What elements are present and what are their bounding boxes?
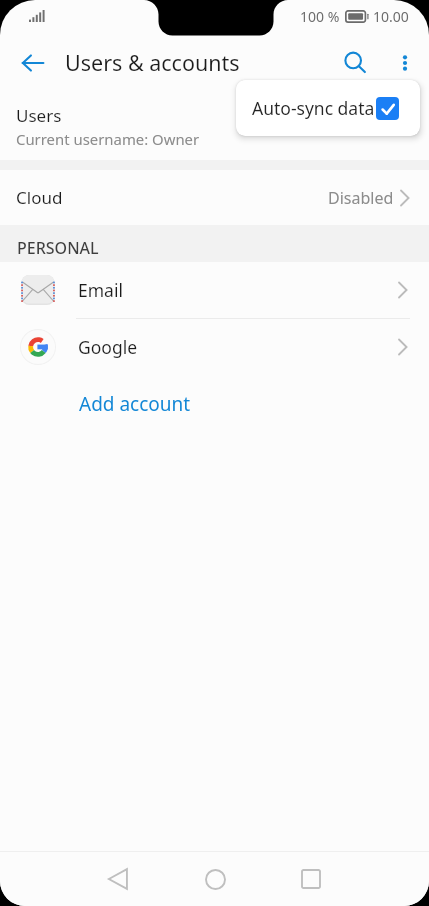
staticText: PERSONAL xyxy=(17,237,99,259)
button[interactable]: Email xyxy=(0,262,429,318)
staticText: Users xyxy=(16,104,62,127)
staticText: Disabled xyxy=(328,187,394,209)
button[interactable]: Back xyxy=(11,41,55,85)
button[interactable]: Google xyxy=(0,319,429,375)
button[interactable]: Back xyxy=(93,853,145,905)
staticText: 100 % xyxy=(300,7,340,26)
staticText: Users & accounts xyxy=(65,48,240,77)
button[interactable]: Recents xyxy=(285,853,337,905)
staticText: Google xyxy=(78,335,138,359)
button[interactable]: Cloud xyxy=(0,170,429,225)
staticText: 10.00 xyxy=(373,7,409,26)
staticText: Current username: Owner xyxy=(16,129,200,149)
button[interactable]: More options xyxy=(381,39,429,87)
staticText: Auto-sync data xyxy=(252,96,375,120)
button[interactable]: Add account xyxy=(79,391,191,417)
button[interactable]: Home xyxy=(189,853,241,905)
staticText: Email xyxy=(78,278,123,302)
staticText: Cloud xyxy=(16,186,63,209)
button[interactable]: Auto-sync data xyxy=(236,80,420,136)
staticText: Add account xyxy=(79,391,191,417)
button[interactable]: Users xyxy=(0,89,429,160)
button[interactable]: Search xyxy=(329,37,381,89)
